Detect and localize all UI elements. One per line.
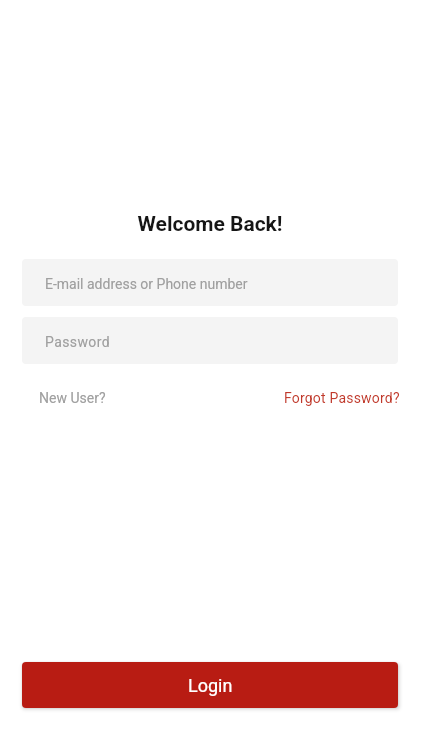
button[interactable]: New User? — [22, 387, 106, 409]
staticText: Password — [45, 334, 111, 350]
button[interactable]: E-mail address or Phone number — [22, 259, 398, 306]
staticText: E-mail address or Phone number — [45, 276, 248, 292]
staticText: Forgot Password? — [284, 390, 400, 406]
staticText: Welcome Back! — [0, 212, 421, 237]
staticText: Login — [188, 675, 233, 696]
staticText: New User? — [39, 390, 106, 406]
button[interactable]: Login — [22, 662, 398, 708]
button[interactable]: Forgot Password? — [284, 387, 400, 409]
button[interactable]: Password — [22, 317, 398, 364]
